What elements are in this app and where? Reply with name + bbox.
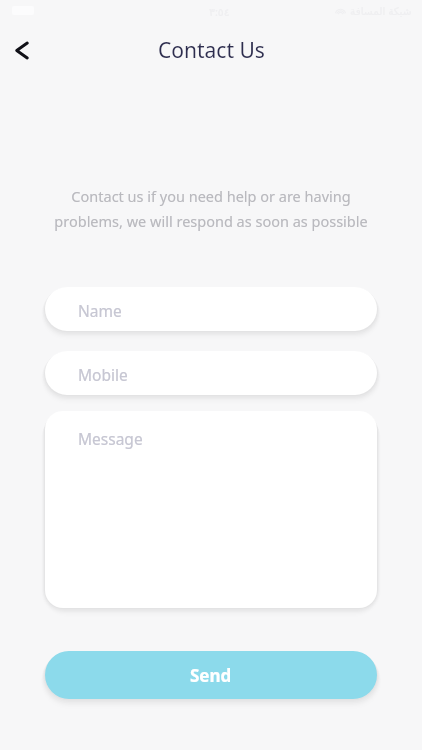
button[interactable]: Send <box>45 651 377 699</box>
staticText: Name <box>78 300 122 321</box>
staticText: Contact Us <box>158 36 265 65</box>
button[interactable]: Back <box>5 33 39 67</box>
staticText: Message <box>78 428 143 449</box>
staticText: Mobile <box>78 364 128 385</box>
button[interactable]: Message <box>45 411 377 608</box>
button[interactable]: Mobile <box>45 351 377 395</box>
button[interactable]: Name <box>45 287 377 331</box>
staticText: Contact us if you need help or are havin… <box>45 186 377 231</box>
staticText: Send <box>190 664 232 687</box>
